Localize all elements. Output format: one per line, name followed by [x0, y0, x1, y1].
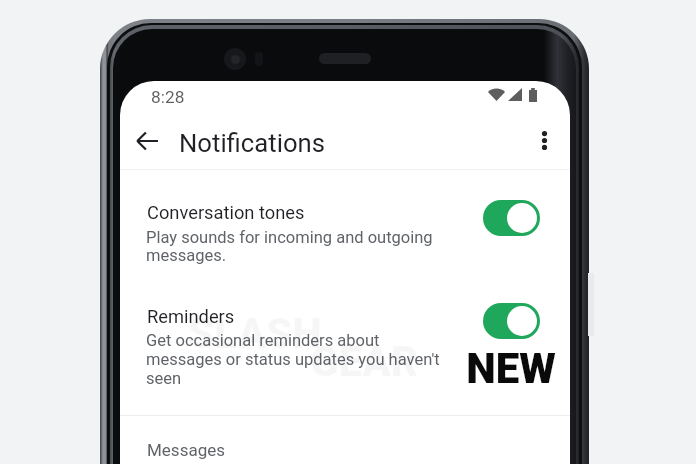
- staticText: Play sounds for incoming and outgoing me…: [146, 228, 433, 266]
- staticText: Reminders: [147, 306, 235, 327]
- staticText: SLASH: [188, 309, 322, 358]
- button[interactable]: Back: [123, 117, 171, 165]
- button[interactable]: Reminders toggle: [483, 303, 540, 339]
- staticText: Get occasional reminders about messages …: [146, 331, 440, 388]
- staticText: Notifications: [179, 128, 326, 158]
- button[interactable]: [120, 293, 570, 405]
- staticText: Messages: [147, 440, 225, 460]
- staticText: 8:28: [151, 87, 185, 107]
- button[interactable]: Conversation tones toggle: [483, 200, 540, 236]
- button[interactable]: [120, 193, 570, 283]
- button[interactable]: More options: [522, 118, 566, 162]
- staticText: NEW: [466, 344, 556, 393]
- staticText: Conversation tones: [147, 202, 305, 223]
- staticText: GEAR: [310, 337, 419, 386]
